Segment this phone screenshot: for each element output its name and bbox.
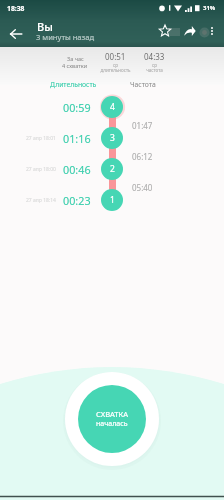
button[interactable]: Settings — [196, 24, 212, 40]
button[interactable]: 27 апр 18:01 — [0, 123, 224, 154]
staticText: 01:16 — [63, 131, 91, 146]
button[interactable]: СХВАТКА — [78, 385, 146, 453]
staticText: 00:59 — [63, 100, 91, 115]
staticText: За час — [67, 55, 84, 62]
staticText: 06:12 — [132, 151, 153, 162]
staticText: 00:23 — [63, 193, 91, 208]
staticText: 27 апр 18:14 — [26, 197, 56, 204]
staticText: ср длительность — [100, 62, 131, 74]
staticText: 2 — [110, 163, 115, 175]
button[interactable]: 27 апр 18:00 — [0, 154, 224, 185]
button[interactable]: Back — [3, 21, 28, 46]
staticText: ср частота — [146, 62, 163, 74]
staticText: 3 минуты назад — [36, 32, 95, 42]
staticText: 1 — [110, 194, 115, 206]
staticText: 05:40 — [132, 182, 153, 193]
button[interactable]: Share — [179, 21, 199, 41]
staticText: 4 — [110, 101, 115, 113]
staticText: 27 апр 18:01 — [26, 135, 56, 142]
staticText: 00:51 — [105, 51, 126, 62]
button[interactable]: 00:59 — [0, 92, 224, 123]
staticText: 31% — [203, 4, 216, 12]
staticText: Длительность — [50, 80, 97, 89]
button[interactable]: Favorite — [155, 21, 175, 41]
staticText: 3 — [110, 132, 115, 144]
button[interactable]: 27 апр 18:14 — [0, 185, 224, 216]
staticText: 4 схватки — [62, 62, 88, 69]
button[interactable]: More options — [204, 23, 220, 39]
staticText: 27 апр 18:00 — [26, 166, 56, 173]
staticText: Вы — [37, 19, 53, 34]
staticText: началась — [96, 419, 128, 429]
staticText: 04:33 — [144, 51, 165, 62]
staticText: 18:38 — [7, 4, 25, 13]
staticText: 00:46 — [63, 162, 91, 177]
staticText: 01:47 — [132, 120, 153, 131]
staticText: СХВАТКА — [96, 409, 128, 419]
staticText: Частота — [130, 80, 156, 89]
